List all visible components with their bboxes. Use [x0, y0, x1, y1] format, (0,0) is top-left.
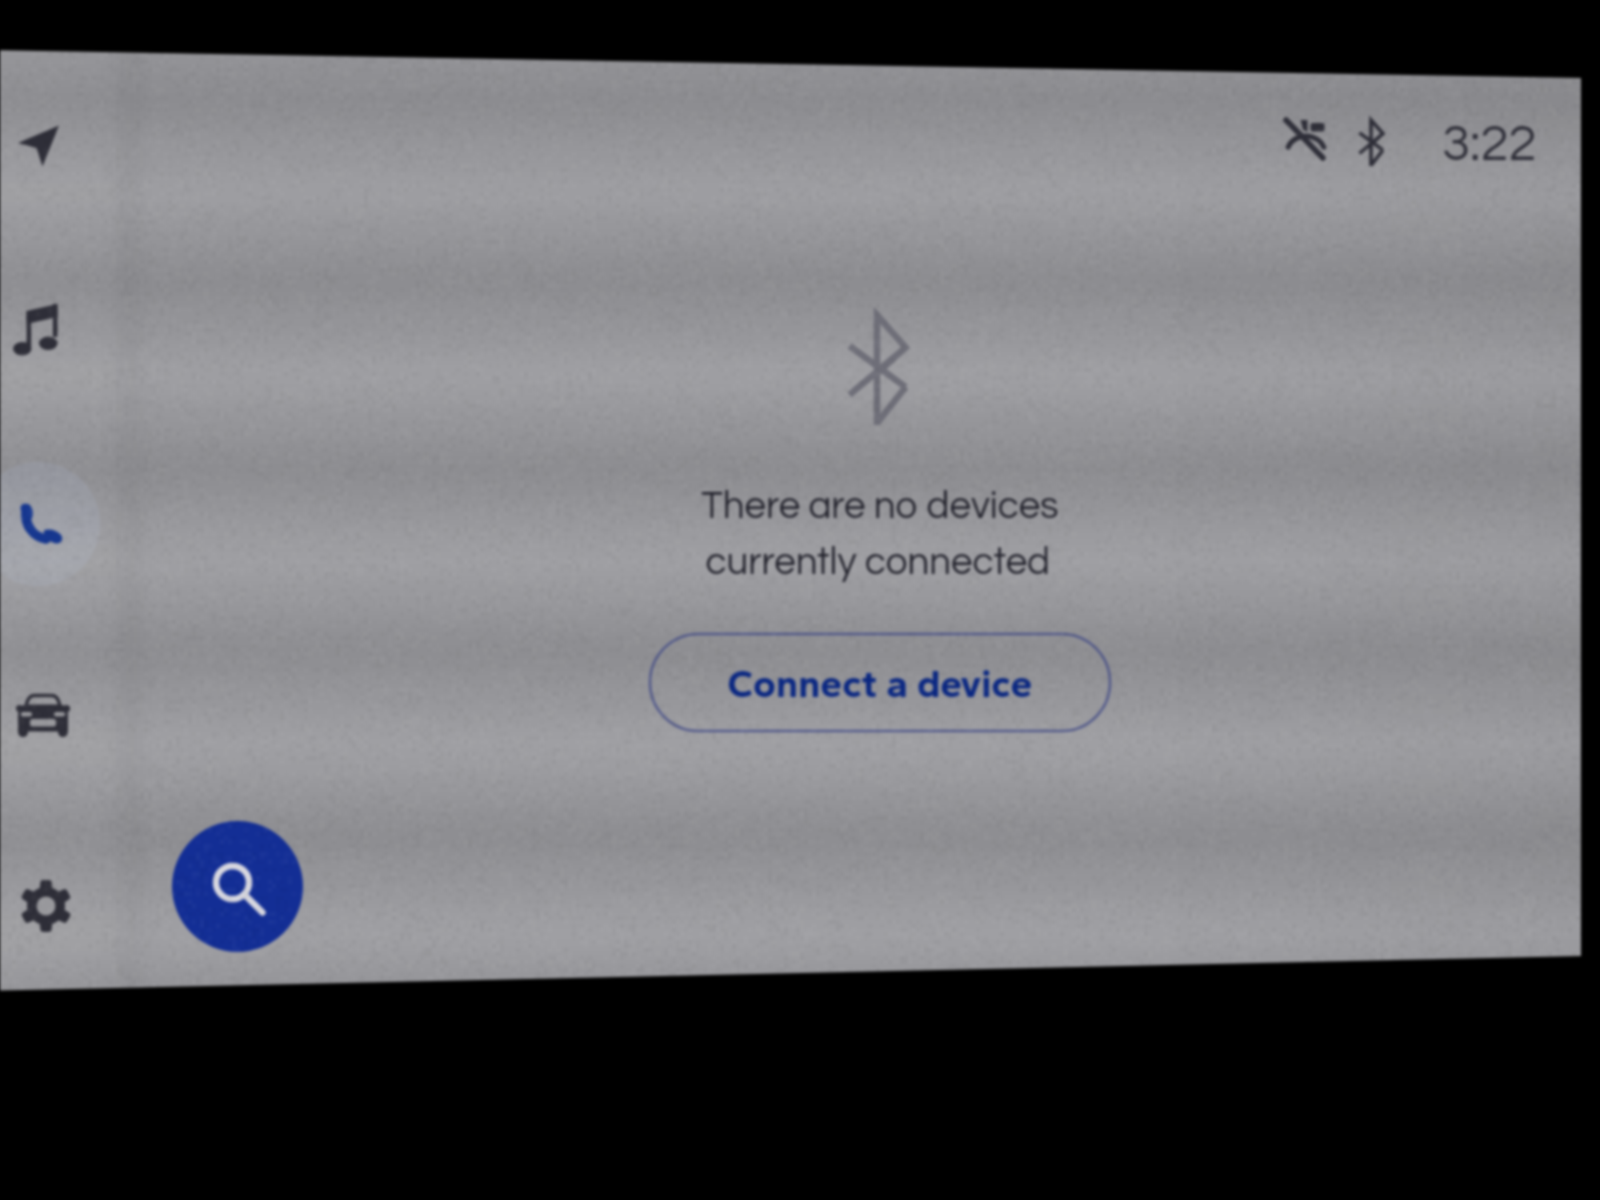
button[interactable]: Phone — [0, 463, 118, 583]
button[interactable]: Settings — [0, 845, 118, 965]
button[interactable]: Navigation — [0, 85, 118, 205]
button[interactable]: Vehicle — [0, 656, 118, 776]
button[interactable]: Search — [172, 821, 303, 952]
button[interactable]: Connect a device — [650, 634, 1110, 731]
button[interactable]: Media — [0, 274, 118, 394]
